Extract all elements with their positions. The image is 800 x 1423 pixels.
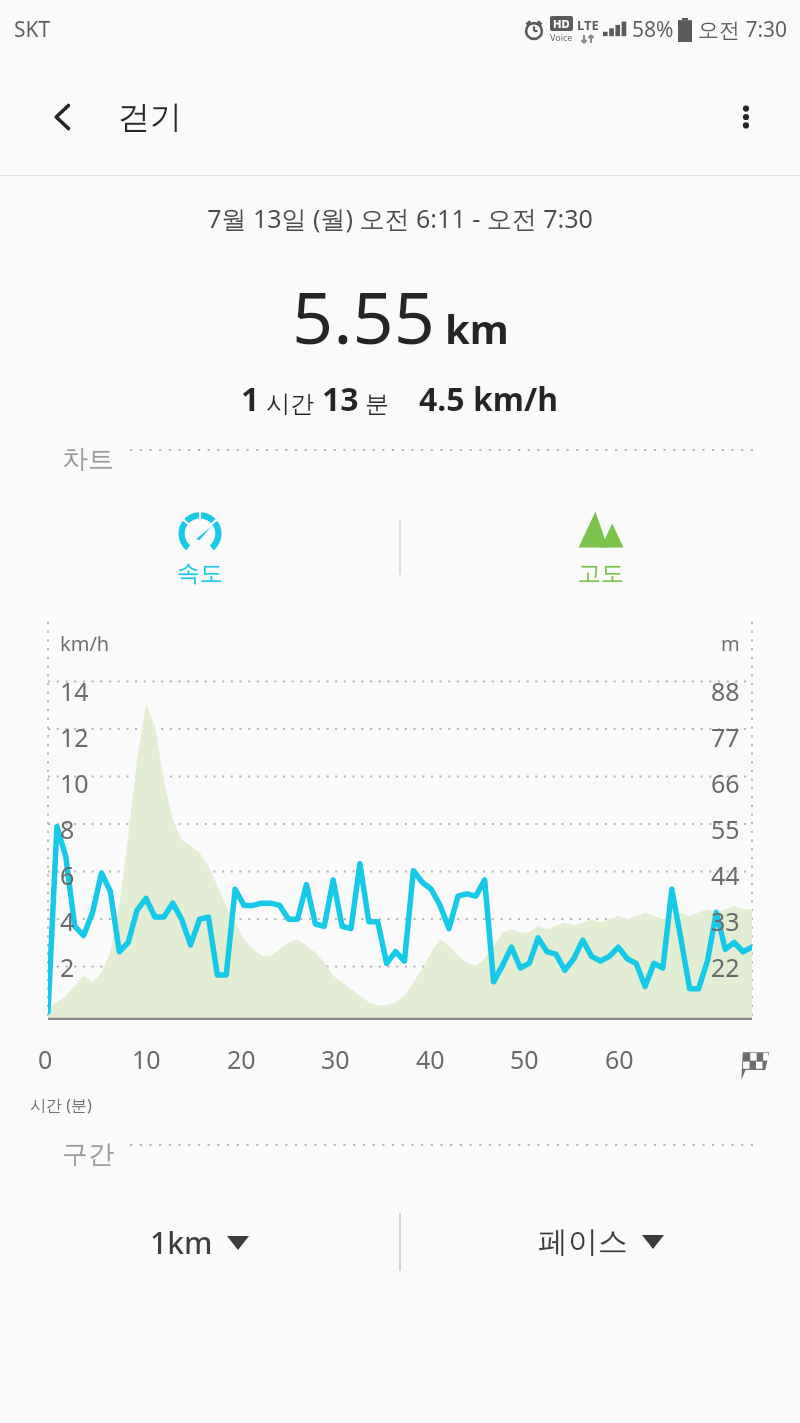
staticText: 44 [711,858,740,892]
staticText: 오전 7:30 [698,15,788,44]
button[interactable]: 페이스 [401,1223,800,1261]
staticText: 5.55 [292,267,435,365]
button[interactable]: Back [38,92,88,142]
staticText: HD [553,16,570,31]
staticText: 88 [711,674,740,708]
staticText: 60 [605,1042,634,1076]
staticText: 차트 [62,443,114,476]
button[interactable]: More options [718,89,774,145]
staticText: 분 [365,389,389,419]
staticText: Voice [550,31,573,43]
staticText: 속도 [177,559,223,588]
button[interactable]: 1km [0,1222,399,1263]
staticText: 66 [711,766,740,800]
staticText: 20 [227,1042,256,1076]
staticText: 10 [60,766,89,800]
staticText: LTE [577,16,599,34]
staticText: 33 [711,904,740,938]
staticText: 1 [241,377,260,421]
staticText: 4 [60,904,75,938]
staticText: 10 [132,1042,161,1076]
staticText: 14 [60,674,89,708]
staticText: 시간 [266,389,314,419]
staticText: 6 [60,858,75,892]
staticText: 8 [60,812,75,846]
staticText: 30 [321,1042,350,1076]
staticText: 50 [510,1042,539,1076]
button[interactable]: 속도 [0,507,399,588]
staticText: 구간 [62,1138,114,1171]
staticText: 77 [711,720,740,754]
staticText: 13 [322,377,359,421]
staticText: 고도 [578,559,624,588]
staticText: 4.5 km/h [419,377,559,421]
staticText: SKT [14,15,51,44]
staticText: 2 [60,950,75,984]
staticText: 12 [60,720,89,754]
staticText: 58% [632,15,674,44]
staticText: 40 [416,1042,445,1076]
staticText: 시간 (분) [30,1094,92,1116]
staticText: 걷기 [118,97,182,137]
staticText: m [721,630,740,657]
staticText: km/h [60,630,110,657]
staticText: 7월 13일 (월) 오전 6:11 - 오전 7:30 [207,201,593,235]
staticText: 22 [711,950,740,984]
staticText: 0 [38,1042,53,1076]
staticText: 1km [150,1222,213,1263]
staticText: 페이스 [538,1223,628,1261]
button[interactable]: 고도 [401,507,800,588]
staticText: 55 [711,812,740,846]
staticText: km [445,301,509,355]
